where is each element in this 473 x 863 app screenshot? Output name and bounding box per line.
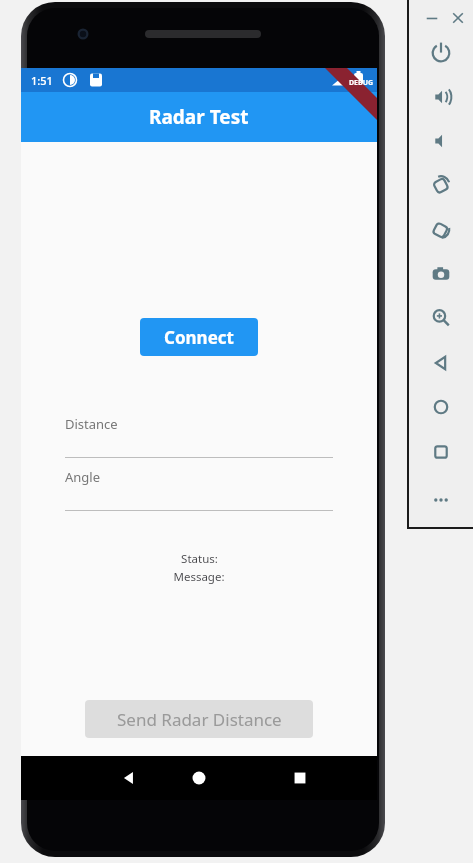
staticText: Angle [65,468,101,486]
button[interactable]: More [428,487,454,513]
button[interactable]: Screenshot [428,261,454,287]
button[interactable]: Rotate right [428,217,454,243]
button[interactable]: Connect [140,318,258,356]
button[interactable]: Send Radar Distance [85,700,313,738]
staticText: Message: [173,569,225,585]
button[interactable]: Close [446,6,470,30]
button[interactable]: Back [428,350,454,376]
button[interactable]: Volume up [428,84,454,110]
staticText: Distance [65,415,118,433]
button[interactable]: Overview [428,439,454,465]
button[interactable]: Minimize [420,6,444,30]
staticText: 1:51 [31,73,53,88]
button[interactable]: Angle [65,466,333,512]
button[interactable]: Overview [270,756,330,800]
button[interactable]: Distance [65,413,333,459]
button[interactable]: Power [428,40,454,66]
button[interactable]: Zoom [428,305,454,331]
button[interactable]: Back [99,756,159,800]
button[interactable]: Volume down [428,128,454,154]
button[interactable]: Home [428,394,454,420]
staticText: Send Radar Distance [117,708,282,731]
staticText: DEBUG [349,78,374,88]
button[interactable]: Home [169,756,229,800]
staticText: Connect [164,326,234,349]
staticText: Radar Test [149,104,249,130]
staticText: Status: [181,551,218,567]
button[interactable]: Rotate left [428,172,454,198]
